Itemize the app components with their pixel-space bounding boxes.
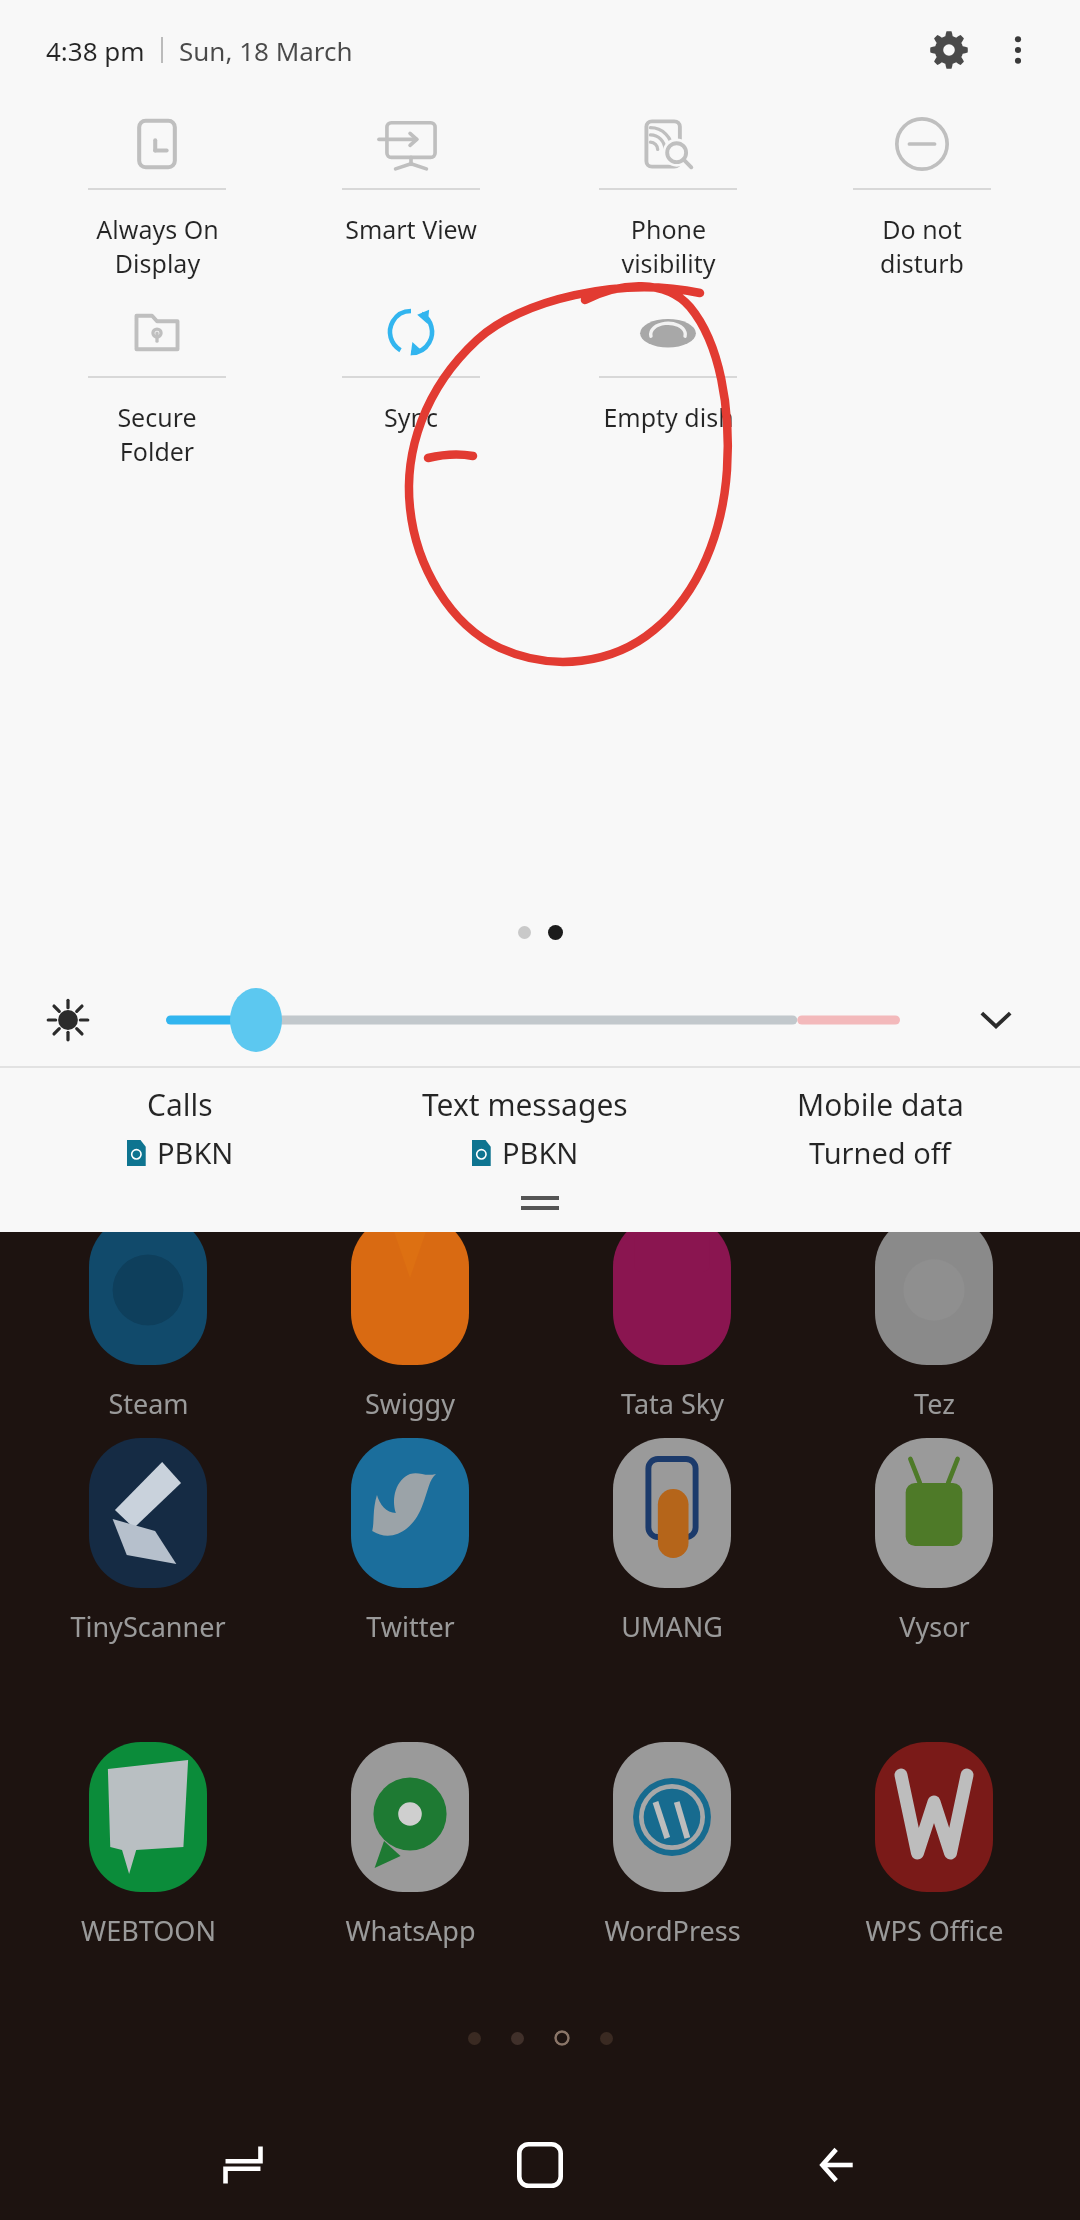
- staticText: WEBTOON: [81, 1912, 216, 1949]
- button[interactable]: WhatsApp: [295, 1734, 525, 2004]
- button[interactable]: Text messages: [360, 1084, 690, 1194]
- button[interactable]: Tez: [819, 1207, 1049, 1477]
- button[interactable]: Recent apps: [188, 2110, 298, 2220]
- button[interactable]: TinyScanner: [33, 1430, 263, 1700]
- button[interactable]: Home: [485, 2110, 595, 2220]
- staticText: Swiggy: [365, 1385, 455, 1422]
- staticText: Always On Display: [96, 212, 219, 280]
- staticText: WPS Office: [865, 1912, 1004, 1949]
- button[interactable]: Steam: [33, 1207, 263, 1477]
- staticText: WhatsApp: [345, 1912, 476, 1949]
- staticText: Sun, 18 March: [179, 33, 353, 68]
- button[interactable]: Mobile data: [690, 1084, 1070, 1194]
- staticText: Secure Folder: [117, 400, 197, 468]
- button[interactable]: Tata Sky: [557, 1207, 787, 1477]
- staticText: Twitter: [366, 1608, 455, 1645]
- button[interactable]: Brightness settings: [38, 990, 98, 1050]
- button[interactable]: Back: [783, 2110, 893, 2220]
- staticText: Steam: [108, 1385, 189, 1422]
- staticText: WordPress: [604, 1912, 741, 1949]
- staticText: UMANG: [621, 1608, 723, 1645]
- staticText: Calls: [147, 1084, 213, 1125]
- staticText: PBKN: [157, 1133, 234, 1172]
- staticText: 4:38 pm: [46, 33, 145, 68]
- button[interactable]: Calls: [0, 1084, 360, 1194]
- button[interactable]: Empty dish: [553, 288, 783, 474]
- button[interactable]: Twitter: [295, 1430, 525, 1700]
- staticText: Tez: [914, 1385, 955, 1422]
- button[interactable]: Do not disturb: [807, 100, 1037, 286]
- staticText: Do not disturb: [880, 212, 964, 280]
- staticText: PBKN: [502, 1133, 579, 1172]
- button[interactable]: UMANG: [557, 1430, 787, 1700]
- staticText: Smart View: [345, 212, 477, 246]
- button[interactable]: Phone visibility: [553, 100, 783, 286]
- button[interactable]: Sync: [296, 288, 526, 474]
- staticText: Vysor: [899, 1608, 970, 1645]
- staticText: Phone visibility: [621, 212, 716, 280]
- staticText: Tata Sky: [621, 1385, 724, 1422]
- button[interactable]: Swiggy: [295, 1207, 525, 1477]
- button[interactable]: Smart View: [296, 100, 526, 286]
- button[interactable]: Expand: [960, 984, 1032, 1056]
- staticText: Sync: [384, 400, 438, 434]
- button[interactable]: Always On Display: [42, 100, 272, 286]
- button[interactable]: More options: [986, 18, 1050, 82]
- button[interactable]: [166, 985, 900, 1055]
- staticText: Text messages: [422, 1084, 628, 1125]
- button[interactable]: WordPress: [557, 1734, 787, 2004]
- button[interactable]: WEBTOON: [33, 1734, 263, 2004]
- button[interactable]: Secure Folder: [42, 288, 272, 474]
- staticText: Mobile data: [797, 1084, 964, 1125]
- other: Current page: [554, 2030, 570, 2046]
- button[interactable]: Vysor: [819, 1430, 1049, 1700]
- button[interactable]: Settings: [912, 13, 986, 87]
- staticText: Turned off: [809, 1133, 951, 1172]
- button[interactable]: WPS Office: [819, 1734, 1049, 2004]
- staticText: TinyScanner: [70, 1608, 226, 1645]
- staticText: Empty dish: [603, 400, 734, 434]
